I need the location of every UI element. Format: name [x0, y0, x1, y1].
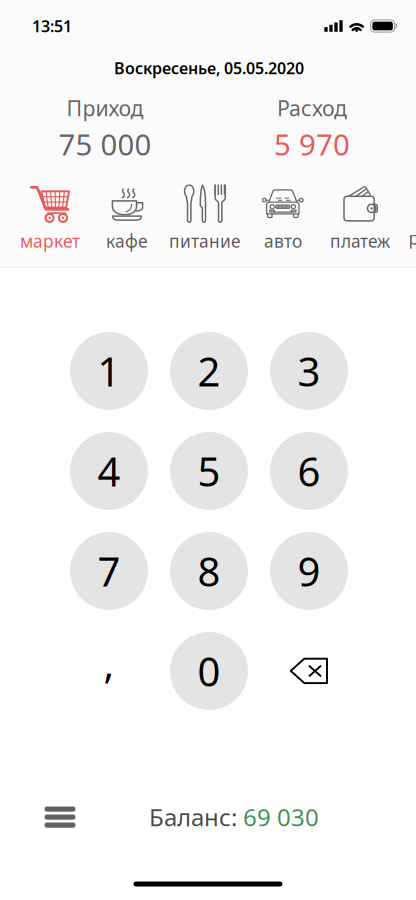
- button[interactable]: 2: [159, 321, 259, 421]
- staticText: р: [408, 226, 416, 249]
- staticText: 6: [297, 444, 320, 497]
- staticText: 5: [197, 444, 220, 497]
- button[interactable]: питание: [166, 175, 244, 255]
- button[interactable]: Menu: [30, 792, 89, 841]
- staticText: Расход: [277, 94, 347, 122]
- staticText: 9: [297, 544, 320, 597]
- button[interactable]: 5: [159, 421, 259, 521]
- staticText: питание: [169, 229, 241, 252]
- staticText: 8: [197, 544, 220, 597]
- button[interactable]: 7: [59, 521, 159, 621]
- staticText: авто: [264, 229, 302, 252]
- staticText: 5 970: [274, 124, 350, 163]
- button[interactable]: 6: [259, 421, 359, 521]
- staticText: кафе: [106, 229, 148, 252]
- staticText: 1: [97, 344, 120, 397]
- button[interactable]: Delete: [259, 621, 359, 721]
- staticText: Приход: [66, 94, 143, 122]
- staticText: 4: [97, 444, 120, 497]
- button[interactable]: 4: [59, 421, 159, 521]
- button[interactable]: маркет: [11, 175, 89, 255]
- button[interactable]: кафе: [88, 175, 166, 255]
- staticText: ,: [103, 636, 114, 689]
- staticText: платеж: [330, 229, 390, 252]
- button[interactable]: авто: [244, 175, 322, 255]
- button[interactable]: платеж: [321, 175, 399, 255]
- staticText: 3: [297, 344, 320, 397]
- button[interactable]: 9: [259, 521, 359, 621]
- button[interactable]: 3: [259, 321, 359, 421]
- staticText: 75 000: [58, 124, 151, 163]
- staticText: Воскресенье, 05.05.2020: [114, 57, 304, 79]
- staticText: 2: [197, 344, 220, 397]
- button[interactable]: 1: [59, 321, 159, 421]
- button[interactable]: 0: [159, 621, 259, 721]
- button[interactable]: Comma: [59, 621, 159, 721]
- staticText: Баланс:: [149, 801, 237, 833]
- button[interactable]: 8: [159, 521, 259, 621]
- staticText: 7: [97, 544, 120, 597]
- staticText: 0: [197, 644, 220, 697]
- staticText: 69 030: [243, 801, 319, 833]
- staticText: маркет: [20, 229, 80, 252]
- staticText: 13:51: [32, 15, 72, 37]
